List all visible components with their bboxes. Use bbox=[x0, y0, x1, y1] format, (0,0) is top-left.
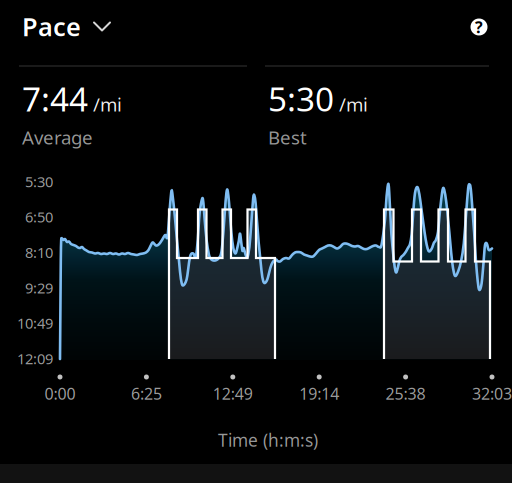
staticText: 9:29 bbox=[25, 278, 53, 297]
staticText: 12:09 bbox=[17, 349, 53, 368]
staticText: 5:30 bbox=[25, 172, 53, 191]
staticText: 25:38 bbox=[386, 383, 426, 404]
staticText: /mi bbox=[93, 92, 122, 117]
staticText: 5:30 bbox=[268, 76, 334, 121]
staticText: 32:03 bbox=[472, 383, 512, 404]
staticText: 19:14 bbox=[299, 383, 339, 404]
button[interactable]: Help bbox=[459, 7, 498, 46]
staticText: 6:25 bbox=[131, 383, 162, 404]
staticText: Pace bbox=[22, 10, 81, 43]
staticText: Best bbox=[268, 125, 307, 150]
staticText: 6:50 bbox=[25, 207, 53, 227]
staticText: Average bbox=[22, 125, 93, 150]
staticText: 12:49 bbox=[213, 383, 253, 404]
staticText: 0:00 bbox=[44, 383, 75, 404]
staticText: 10:49 bbox=[17, 313, 53, 333]
staticText: 8:10 bbox=[25, 243, 53, 262]
staticText: 7:44 bbox=[22, 76, 88, 121]
staticText: ? bbox=[475, 16, 483, 38]
staticText: /mi bbox=[339, 92, 368, 117]
button[interactable]: Pace bbox=[0, 0, 120, 56]
staticText: Time (h:m:s) bbox=[218, 428, 318, 451]
